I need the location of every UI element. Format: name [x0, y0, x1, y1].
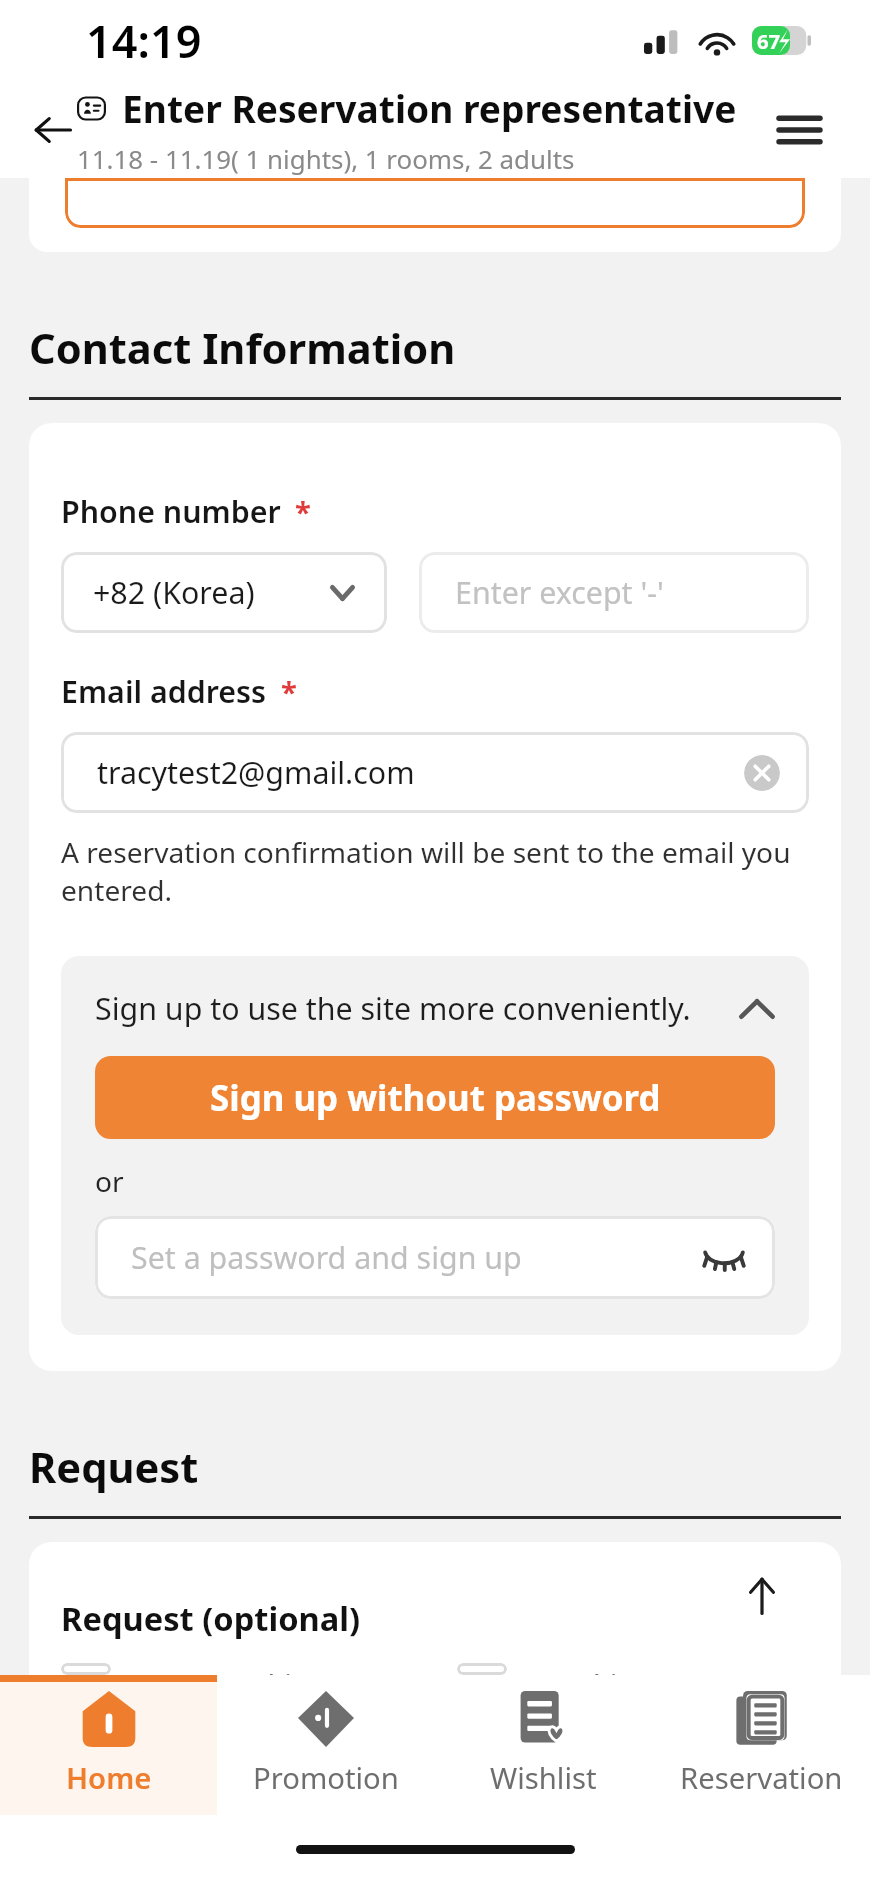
button[interactable]: Reservation — [652, 1675, 870, 1815]
button[interactable]: tracytest2@gmail.com — [61, 732, 809, 813]
staticText: A reservation confirmation will be sent … — [61, 833, 809, 909]
button[interactable]: Scroll to top — [717, 1551, 807, 1641]
button[interactable]: Sign up to use the site more convenientl… — [95, 988, 775, 1029]
staticText: Sign up without password — [210, 1074, 661, 1121]
button[interactable]: Clear email — [744, 755, 780, 791]
staticText: +82 (Korea) — [93, 572, 255, 613]
staticText: Request (optional) — [61, 1596, 361, 1640]
staticText: Sign up to use the site more convenientl… — [95, 988, 691, 1029]
button[interactable]: Smoking room — [457, 1663, 809, 1675]
button[interactable]: Menu — [761, 91, 838, 168]
button[interactable]: Promotion — [217, 1675, 434, 1815]
staticText: 14:19 — [86, 10, 202, 71]
button[interactable]: Sign up without password — [95, 1056, 775, 1139]
staticText: 67 — [757, 27, 781, 55]
button[interactable]: Set a password and sign up — [95, 1216, 775, 1299]
staticText: Home — [66, 1758, 152, 1798]
staticText: Set a password and sign up — [131, 1237, 522, 1278]
staticText: Enter Reservation representative — [122, 83, 737, 134]
staticText: Email address — [61, 671, 267, 712]
button[interactable]: Back — [14, 91, 91, 168]
staticText: Enter except '-' — [455, 572, 664, 613]
button[interactable]: Non-smoking room — [61, 1663, 412, 1675]
staticText: Promotion — [253, 1758, 399, 1798]
staticText: * — [281, 672, 297, 712]
staticText: Phone number — [61, 491, 281, 532]
staticText: Wishlist — [490, 1758, 597, 1798]
staticText: Contact Information — [29, 320, 456, 377]
staticText: Non-smoking room — [131, 1663, 412, 1675]
button[interactable]: Wishlist — [434, 1675, 652, 1815]
button[interactable]: Enter except '-' — [419, 552, 809, 633]
button[interactable]: +82 (Korea) — [61, 552, 387, 633]
button[interactable]: Home — [0, 1675, 217, 1815]
staticText: 11.18 - 11.19( 1 nights), 1 rooms, 2 adu… — [77, 141, 575, 176]
staticText: Request — [29, 1439, 199, 1496]
staticText: tracytest2@gmail.com — [97, 752, 415, 793]
staticText: * — [295, 492, 311, 532]
button[interactable] — [65, 178, 805, 228]
staticText: Smoking room — [527, 1663, 745, 1675]
staticText: Reservation — [680, 1758, 843, 1798]
staticText: or — [95, 1162, 124, 1200]
